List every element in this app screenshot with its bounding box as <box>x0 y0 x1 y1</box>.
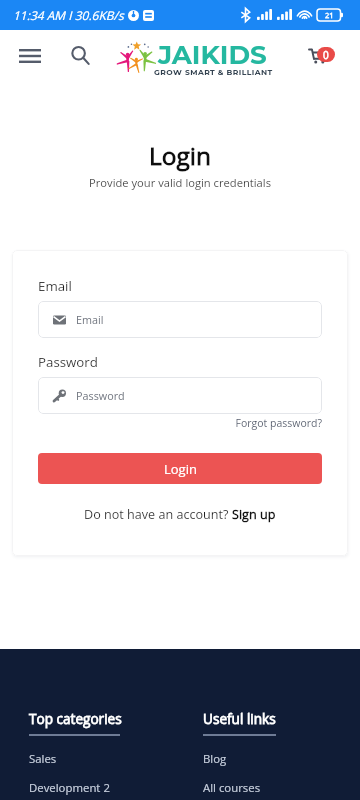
staticText: Email <box>76 312 104 327</box>
button[interactable]: Development 2 <box>29 780 110 796</box>
button[interactable]: Menu <box>7 36 51 76</box>
button[interactable]: Sales <box>29 751 57 767</box>
staticText: 0 <box>323 48 329 62</box>
button[interactable]: Search <box>60 35 100 75</box>
staticText: Provide your valid login credentials <box>0 175 360 190</box>
button[interactable]: Password <box>38 377 322 414</box>
staticText: GROW SMART & BRILLIANT <box>154 68 273 77</box>
staticText: Top categories <box>29 709 122 728</box>
button[interactable]: All courses <box>203 780 261 796</box>
staticText: 11:34 AM I 30.6KB/s <box>13 7 124 23</box>
staticText: 21 <box>325 10 334 20</box>
button[interactable]: Login <box>38 453 322 484</box>
staticText: Useful links <box>203 709 276 728</box>
staticText: Password <box>38 353 98 371</box>
button[interactable]: Blog <box>203 751 227 767</box>
staticText: JAIKIDS <box>158 39 267 71</box>
staticText: Email <box>38 277 72 295</box>
button[interactable]: Sign up <box>232 506 276 523</box>
button[interactable]: Cart <box>300 36 344 76</box>
staticText: Login <box>0 139 360 172</box>
staticText: Login <box>164 460 197 478</box>
button[interactable]: Email <box>38 301 322 338</box>
staticText: Password <box>76 388 125 403</box>
button[interactable]: Forgot password? <box>38 416 322 430</box>
staticText: Do not have an account? <box>84 506 232 523</box>
